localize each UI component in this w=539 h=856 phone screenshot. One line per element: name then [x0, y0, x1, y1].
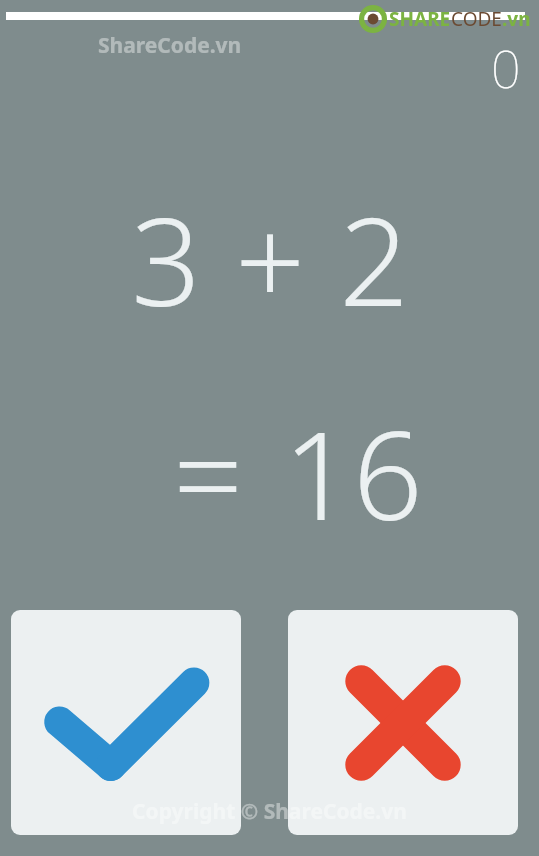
staticText: 2: [339, 176, 409, 342]
staticText: .vn: [502, 6, 531, 32]
staticText: 0: [491, 32, 521, 103]
staticText: 16: [283, 390, 423, 556]
button[interactable]: Wrong: [288, 610, 518, 835]
button[interactable]: Correct: [11, 610, 241, 835]
staticText: SHARE: [389, 6, 451, 32]
staticText: 3: [131, 176, 201, 342]
staticText: ShareCode.vn: [98, 31, 242, 60]
staticText: =: [173, 390, 243, 556]
staticText: CODE: [451, 6, 502, 32]
staticText: +: [235, 176, 305, 342]
staticText: Copyright © ShareCode.vn: [132, 797, 407, 826]
button[interactable]: Score: [487, 30, 525, 105]
